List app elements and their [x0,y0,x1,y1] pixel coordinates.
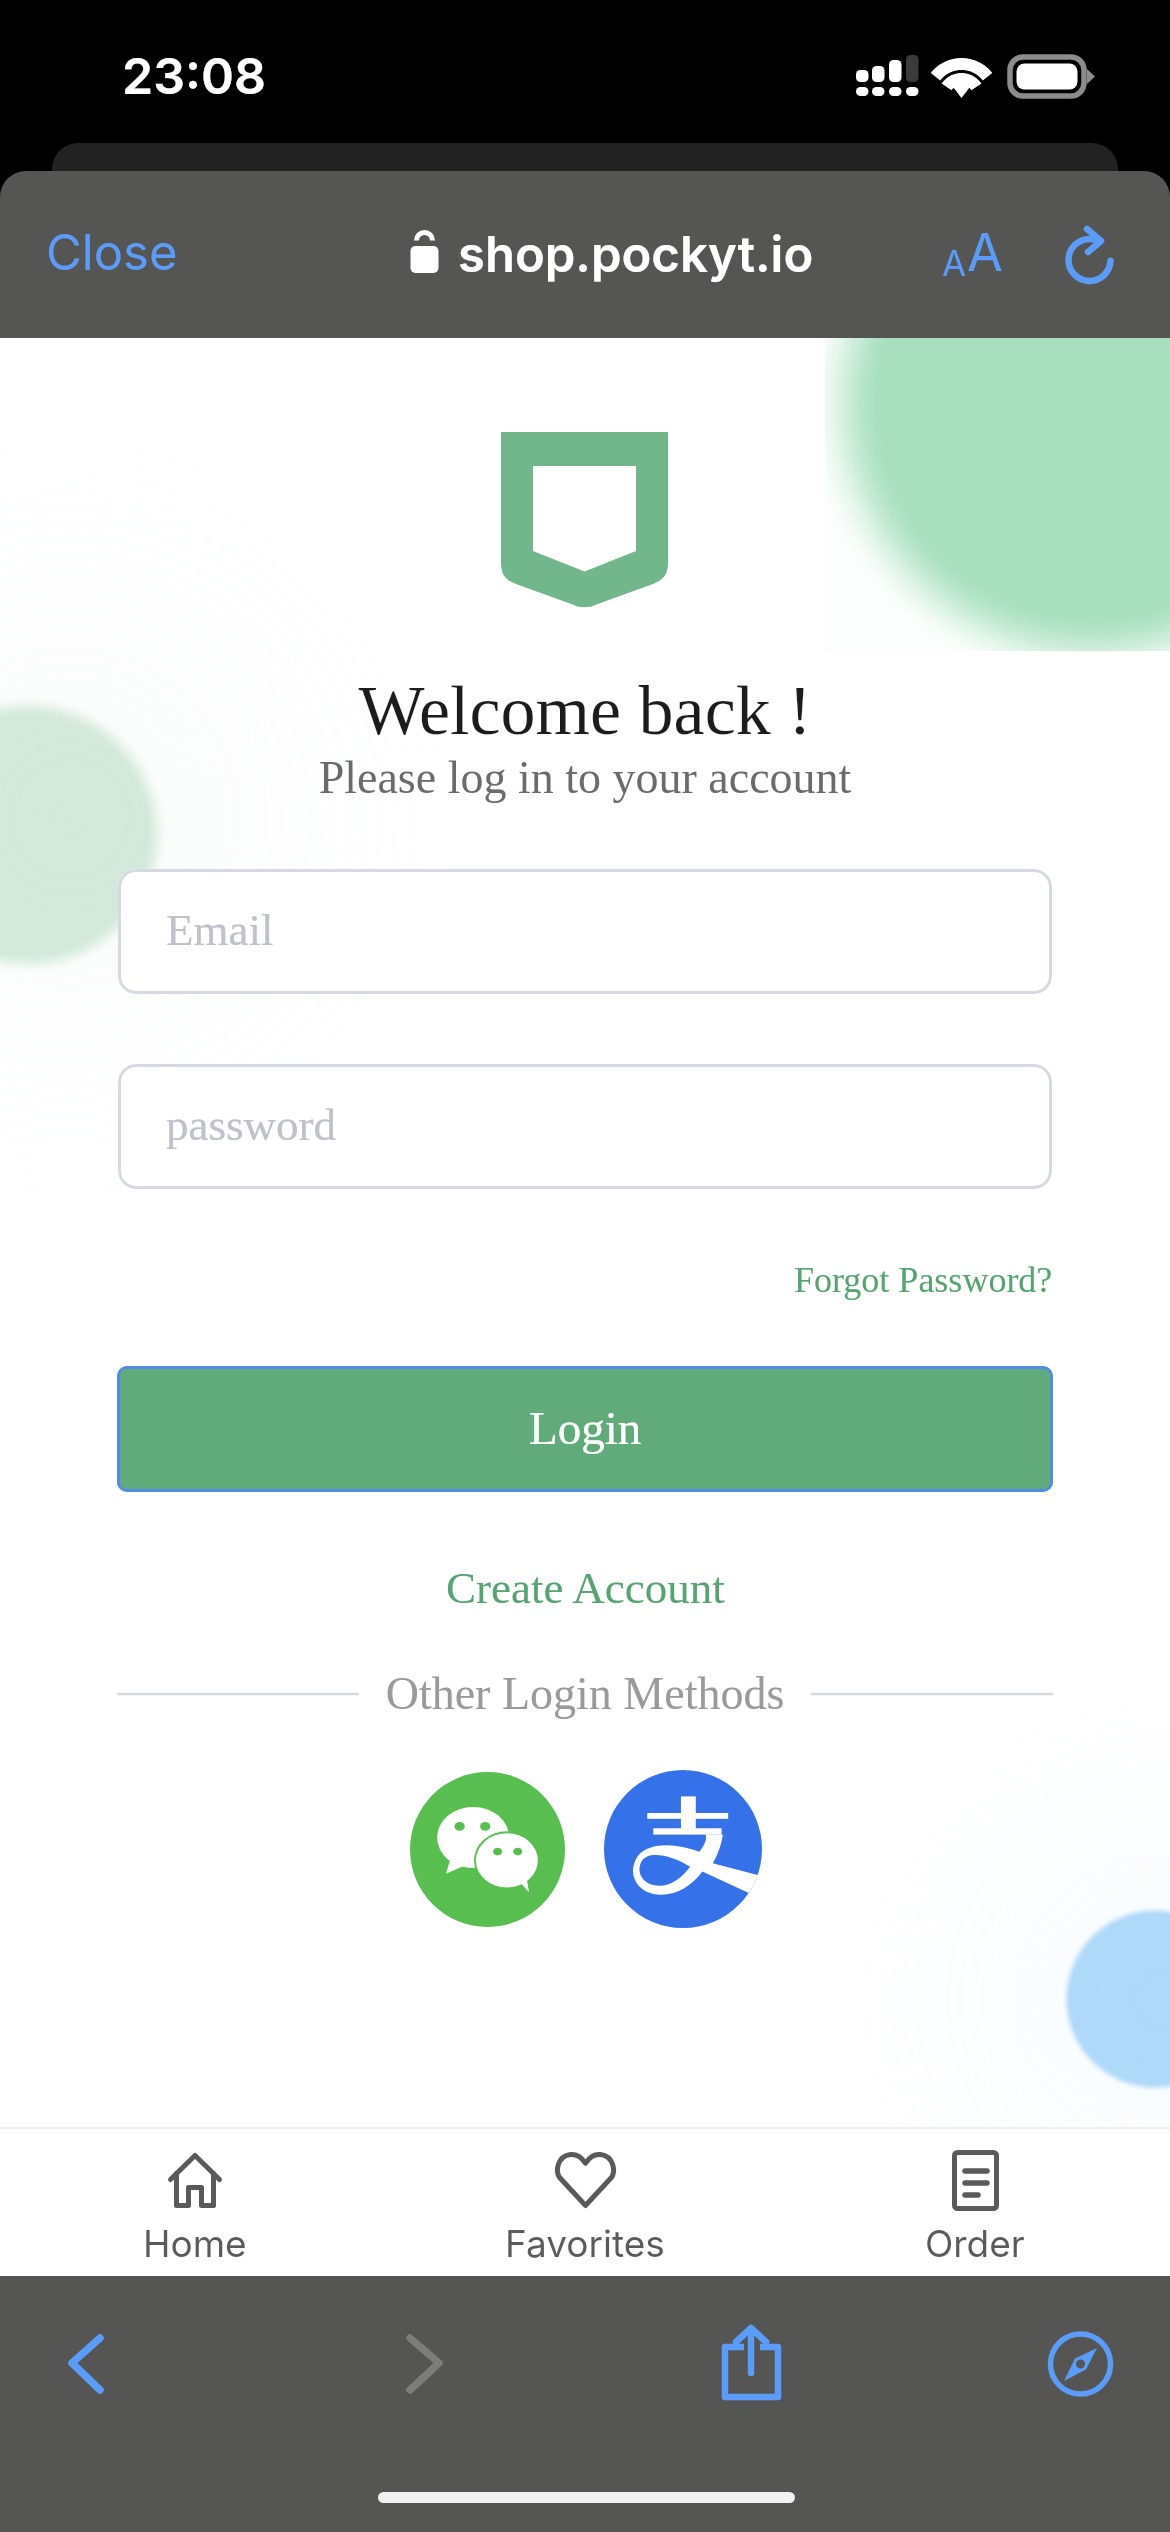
staticText: 23:08 [122,46,266,106]
button[interactable]: Log in with Alipay [604,1770,762,1928]
button[interactable]: Favorites [390,2129,780,2191]
staticText: Login [529,1402,642,1454]
staticText: Home [143,2221,247,2266]
button[interactable]: Order [780,2129,1170,2191]
button[interactable]: Share [702,2312,798,2412]
button[interactable]: Back [36,2322,128,2418]
button[interactable]: Forgot Password? [780,1250,1067,1310]
staticText: Welcome back ! [0,672,1170,750]
staticText: A [967,221,1003,284]
staticText: Please log in to your account [0,752,1170,803]
button[interactable]: Create Account [430,1555,741,1621]
button[interactable]: Forward [375,2322,467,2418]
button[interactable]: Close [28,209,196,296]
staticText: Order [925,2221,1025,2266]
staticText: shop.pockyt.io [458,225,814,284]
staticText: Create Account [446,1563,725,1613]
button[interactable]: Tabs [1036,2320,1126,2410]
staticText: Other Login Methods [0,1668,1170,1719]
staticText: password [166,1100,336,1150]
button[interactable]: Login [117,1366,1053,1492]
button[interactable]: Text size [930,211,1015,294]
button[interactable]: Home [0,2129,390,2191]
staticText: Email [166,905,274,955]
staticText: Forgot Password? [794,1260,1053,1300]
button[interactable]: Reload [1049,219,1131,301]
button[interactable]: password [118,1064,1052,1189]
button[interactable]: Log in with WeChat [410,1772,565,1927]
button[interactable]: Email [118,869,1052,994]
staticText: A [942,242,967,284]
staticText: Favorites [505,2221,665,2266]
staticText: Close [46,223,178,282]
